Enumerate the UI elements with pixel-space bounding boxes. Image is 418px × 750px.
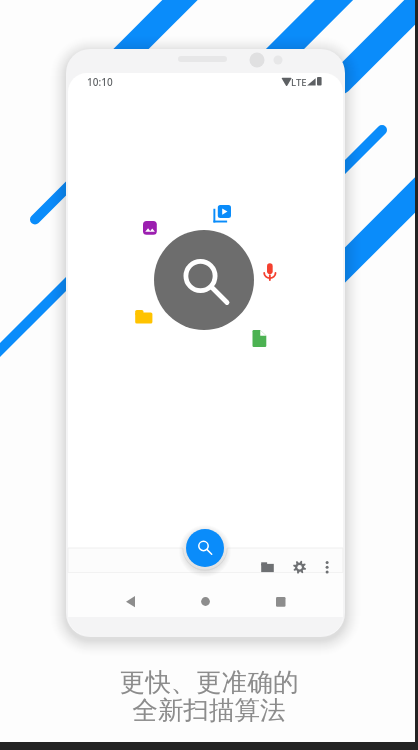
button[interactable]: Home <box>192 588 219 615</box>
button[interactable]: Back <box>118 588 145 615</box>
button[interactable]: Search <box>183 527 227 571</box>
button[interactable]: Settings <box>286 551 310 575</box>
staticText: LTE <box>291 76 307 89</box>
button[interactable]: Recent apps <box>266 588 293 615</box>
staticText: 10:10 <box>87 75 113 89</box>
staticText: 更快、更准确的 全新扫描算法 <box>0 666 418 726</box>
button[interactable]: More options <box>315 551 337 573</box>
button[interactable]: Folder <box>253 550 277 574</box>
